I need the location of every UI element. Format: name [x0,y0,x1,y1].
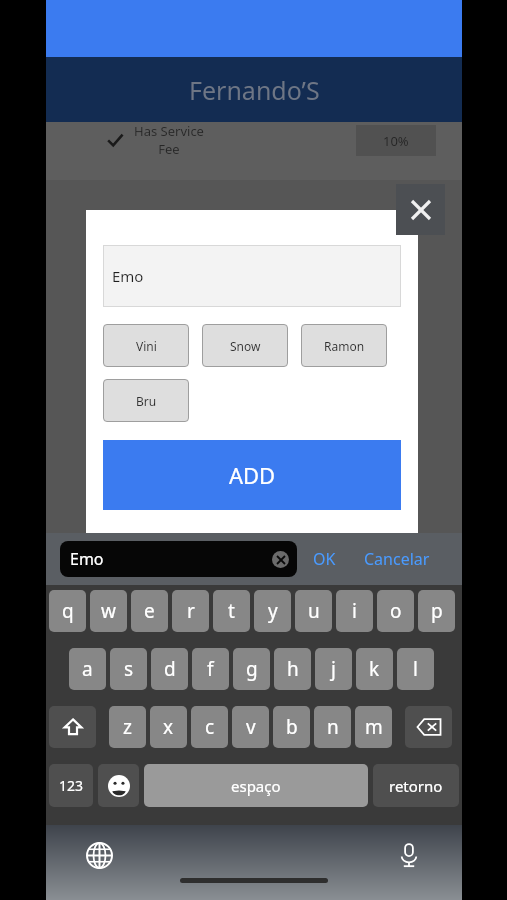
button[interactable]: i [336,590,373,632]
staticText: Snow [230,338,261,354]
staticText: e [144,598,155,624]
staticText: Emo [112,266,144,286]
button[interactable]: retorno [373,764,459,807]
staticText: q [62,598,74,624]
button[interactable]: g [233,648,270,690]
staticText: i [352,598,357,624]
button[interactable]: Dictation [392,838,426,872]
button[interactable]: x [150,706,187,748]
staticText: ADD [229,460,276,490]
staticText: u [308,598,320,624]
staticText: Has Service Fee [134,122,204,158]
button[interactable]: Bru [103,379,189,422]
button[interactable]: Backspace [405,706,452,748]
staticText: Emo [70,548,104,570]
staticText: p [431,598,443,624]
button[interactable]: v [232,706,269,748]
staticText: h [287,656,299,682]
button[interactable]: a [69,648,106,690]
button[interactable]: q [49,590,86,632]
button[interactable]: d [151,648,188,690]
button[interactable]: Shift [49,706,96,748]
button[interactable]: 123 [49,764,93,807]
button[interactable]: Cancelar [360,548,434,570]
staticText: o [390,598,402,624]
staticText: w [101,598,116,624]
button[interactable]: k [356,648,393,690]
button[interactable]: Ramon [301,324,387,367]
button[interactable]: z [109,706,146,748]
button[interactable]: u [295,590,332,632]
staticText: x [163,714,174,740]
staticText: n [327,714,339,740]
button[interactable]: Vini [103,324,189,367]
staticText: r [187,598,195,624]
button[interactable]: r [172,590,209,632]
staticText: m [365,714,383,740]
button[interactable]: espaço [144,764,368,807]
button[interactable]: s [110,648,147,690]
staticText: j [331,656,336,682]
button[interactable]: Clear text [272,551,289,568]
staticText: Cancelar [364,548,430,570]
button[interactable]: w [90,590,127,632]
button[interactable]: h [274,648,311,690]
staticText: 10% [383,132,409,150]
button[interactable]: Change keyboard language [82,838,116,872]
button[interactable]: 10% [356,125,436,156]
staticText: Ramon [324,338,365,354]
staticText: OK [313,548,336,570]
button[interactable]: Emo [60,541,297,577]
button[interactable]: Emo [103,245,401,307]
button[interactable]: Close [396,184,445,235]
staticText: Fernando’S [189,73,320,107]
staticText: v [246,714,256,740]
staticText: g [246,656,258,682]
button[interactable]: o [377,590,414,632]
staticText: b [286,714,298,740]
button[interactable]: OK [309,548,340,570]
button[interactable]: m [355,706,392,748]
staticText: z [123,714,132,740]
staticText: espaço [231,776,281,796]
button[interactable]: p [418,590,455,632]
staticText: s [124,656,134,682]
button[interactable]: y [254,590,291,632]
button[interactable]: ADD [103,440,401,510]
button[interactable]: t [213,590,250,632]
button[interactable]: c [191,706,228,748]
staticText: c [205,714,215,740]
button[interactable]: Has Service Fee [106,122,204,158]
button[interactable]: f [192,648,229,690]
staticText: a [82,656,93,682]
staticText: f [207,656,214,682]
button[interactable]: b [273,706,310,748]
staticText: Vini [136,338,157,354]
button[interactable]: e [131,590,168,632]
staticText: l [413,656,418,682]
staticText: 123 [59,776,84,795]
button[interactable]: Snow [202,324,288,367]
staticText: t [228,598,235,624]
button[interactable]: Emoji [98,764,139,807]
button[interactable]: l [397,648,434,690]
staticText: retorno [389,776,443,796]
button[interactable]: n [314,706,351,748]
staticText: Bru [136,393,157,409]
staticText: y [268,598,278,624]
staticText: k [369,656,380,682]
staticText: d [164,656,176,682]
button[interactable]: j [315,648,352,690]
